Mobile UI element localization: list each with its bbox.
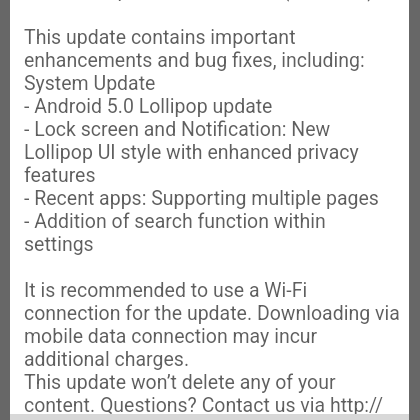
staticText: Lollipop UI style with enhanced privacy xyxy=(24,141,359,164)
button[interactable]: Open support website xyxy=(24,394,384,417)
staticText: enhancements and bug fixes, including: xyxy=(24,49,365,72)
button[interactable]: Install now xyxy=(210,414,420,420)
staticText: - Android 5.0 Lollipop update xyxy=(24,95,273,118)
staticText: System Update xyxy=(24,72,156,95)
staticText: It is recommended to use a Wi-Fi xyxy=(24,279,308,302)
button[interactable]: Later xyxy=(0,414,210,420)
staticText: content. Questions? Contact us via http:… xyxy=(24,394,384,417)
staticText: connection for the update. Downloading v… xyxy=(24,302,400,325)
staticText: features xyxy=(24,164,96,187)
staticText: mobile data connection may incur xyxy=(24,325,318,348)
staticText: Software update downloaded (1131 MB) xyxy=(24,0,375,2)
staticText: This update won’t delete any of your xyxy=(24,371,336,394)
staticText: additional charges. xyxy=(24,348,190,371)
staticText: settings xyxy=(24,233,94,256)
staticText: - Lock screen and Notification: New xyxy=(24,118,331,141)
staticText: - Addition of search function within xyxy=(24,210,326,233)
staticText: This update contains important xyxy=(24,26,296,49)
staticText: - Recent apps: Supporting multiple pages xyxy=(24,187,379,210)
